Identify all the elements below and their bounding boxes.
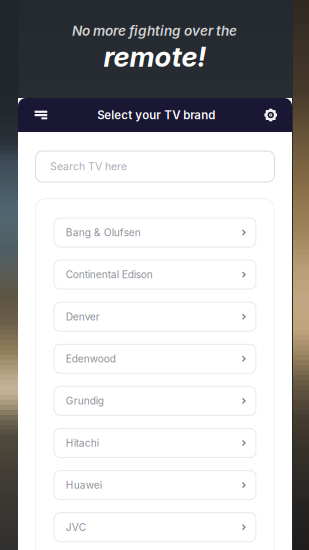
button[interactable]: Edenwood [54, 344, 256, 373]
staticText: Edenwood [66, 353, 116, 365]
button[interactable]: Search TV here [35, 151, 274, 182]
button[interactable]: Continental Edison [54, 260, 256, 289]
staticText: Hitachi [66, 437, 99, 449]
button[interactable]: Bang & Olufsen [54, 218, 256, 247]
staticText: Search TV here [50, 160, 127, 173]
button[interactable]: JVC [54, 513, 256, 542]
button[interactable]: Grundig [54, 386, 256, 415]
button[interactable]: Denver [54, 302, 256, 331]
staticText: Huawei [66, 479, 102, 491]
staticText: Grundig [66, 395, 104, 407]
button[interactable]: Hitachi [54, 428, 256, 457]
staticText: Denver [66, 311, 100, 323]
staticText: No more fighting over the [72, 22, 237, 39]
staticText: JVC [66, 521, 86, 533]
staticText: Bang & Olufsen [66, 226, 141, 239]
button[interactable]: Settings [265, 98, 292, 132]
staticText: Continental Edison [66, 268, 153, 281]
staticText: Select your TV brand [97, 108, 215, 122]
button[interactable]: Menu [18, 98, 47, 132]
button[interactable]: Huawei [54, 471, 256, 500]
staticText: remote! [103, 40, 205, 73]
